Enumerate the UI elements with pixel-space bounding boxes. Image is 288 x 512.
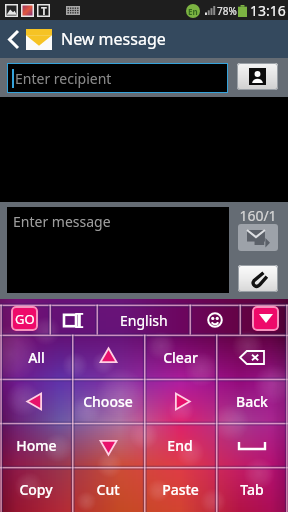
- button[interactable]: down: [72, 423, 144, 467]
- staticText: 13:16: [250, 1, 286, 20]
- staticText: GO: [15, 310, 35, 328]
- button[interactable]: All: [0, 335, 72, 379]
- staticText: Copy: [19, 480, 53, 499]
- button[interactable]: Hide keyboard: [252, 306, 279, 331]
- staticText: Cut: [96, 480, 120, 499]
- staticText: Paste: [162, 480, 199, 499]
- button[interactable]: Clear: [144, 335, 216, 379]
- staticText: Home: [16, 436, 57, 455]
- button[interactable]: Switch input method: [50, 305, 97, 335]
- button[interactable]: Emoticons: [190, 305, 240, 335]
- staticText: Clear: [163, 348, 198, 367]
- button[interactable]: Choose contact: [237, 63, 278, 90]
- button[interactable]: Attach: [238, 265, 278, 292]
- button[interactable]: Navigate up: [0, 20, 26, 58]
- button[interactable]: End: [144, 423, 216, 467]
- staticText: Enter message: [13, 212, 111, 231]
- button[interactable]: Enter recipient: [7, 63, 228, 93]
- button[interactable]: GO: [11, 306, 38, 331]
- staticText: All: [28, 348, 45, 367]
- button[interactable]: Copy: [0, 467, 72, 511]
- staticText: End: [167, 436, 193, 455]
- button[interactable]: Home: [0, 423, 72, 467]
- button[interactable]: English: [97, 305, 190, 335]
- staticText: En: [188, 6, 198, 17]
- button[interactable]: Send message: [238, 224, 278, 251]
- staticText: Tab: [240, 480, 264, 499]
- button[interactable]: Cut: [72, 467, 144, 511]
- button[interactable]: del: [216, 335, 288, 379]
- staticText: Back: [236, 392, 268, 411]
- button[interactable]: Back: [216, 379, 288, 423]
- button[interactable]: space: [216, 423, 288, 467]
- button[interactable]: up: [72, 335, 144, 379]
- staticText: T: [41, 4, 47, 17]
- staticText: New message: [61, 28, 166, 50]
- button[interactable]: Tab: [216, 467, 288, 511]
- staticText: 78%: [217, 4, 237, 18]
- button[interactable]: Enter message: [7, 207, 229, 293]
- staticText: English: [120, 311, 168, 330]
- button[interactable]: left: [0, 379, 72, 423]
- staticText: 160/1: [239, 206, 277, 225]
- staticText: Enter recipient: [15, 69, 112, 88]
- button[interactable]: Choose: [72, 379, 144, 423]
- staticText: Choose: [83, 392, 133, 411]
- button[interactable]: Paste: [144, 467, 216, 511]
- button[interactable]: right: [144, 379, 216, 423]
